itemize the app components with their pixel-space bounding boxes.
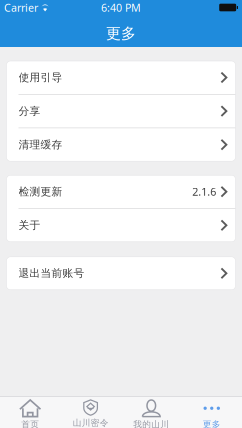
button[interactable]: 我的山川 [121,397,181,428]
staticText: 2.1.6 [192,184,216,199]
button[interactable]: 山川密令 [60,397,121,428]
staticText: 使用引导 [18,71,62,84]
staticText: 更多 [203,419,221,428]
button[interactable]: 检测更新 [6,175,235,208]
staticText: 首页 [21,419,39,428]
button[interactable]: 退出当前账号 [6,257,235,290]
staticText: 检测更新 [18,185,62,198]
staticText: 关于 [18,219,40,232]
staticText: 6:40 PM [101,0,141,15]
button[interactable]: 清理缓存 [6,128,235,161]
button[interactable]: 分享 [6,95,235,128]
button[interactable]: 首页 [0,397,60,428]
staticText: 山川密令 [73,417,109,428]
button[interactable]: 关于 [6,209,235,242]
staticText: 更多 [106,24,136,43]
staticText: 我的山川 [133,419,169,428]
button[interactable]: 更多 [181,397,242,428]
button[interactable]: 使用引导 [6,61,235,94]
staticText: Carrier [4,0,38,15]
staticText: 清理缓存 [18,138,62,151]
staticText: 分享 [18,104,40,118]
staticText: 退出当前账号 [18,267,84,280]
